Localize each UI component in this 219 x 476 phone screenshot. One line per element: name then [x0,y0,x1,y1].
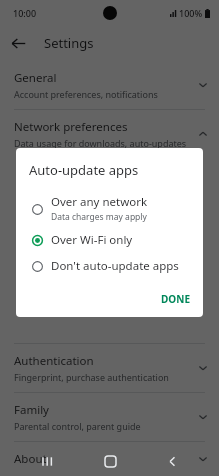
button[interactable]: Back [0,25,36,61]
button[interactable]: Don't auto-update apps [16,253,203,279]
staticText: Settings [44,34,94,52]
button[interactable]: Network preferences [0,110,219,158]
staticText: Data usage for downloads, auto-updates [14,137,187,149]
button[interactable]: Over Wi-Fi only [16,227,203,253]
staticText: Over Wi-Fi only [51,232,133,248]
button[interactable]: Authentication [0,344,219,392]
staticText: Network preferences [14,119,128,135]
staticText: Account preferences, notifications [14,88,158,100]
button[interactable]: About [0,442,219,476]
staticText: DONE [161,292,190,306]
staticText: Parental control, parent guide [14,420,141,432]
button[interactable]: Back [157,446,187,476]
staticText: 100% [179,7,203,19]
button[interactable]: Family [0,393,219,441]
button[interactable]: Over any network [16,190,203,227]
button[interactable]: General [0,61,219,109]
staticText: Don't auto-update apps [51,258,179,274]
staticText: Fingerprint, purchase authentication [14,371,169,383]
staticText: Auto-update apps [29,161,139,179]
button[interactable]: DONE [148,287,203,311]
staticText: Data charges may apply [51,211,147,223]
staticText: Over any network [51,194,148,210]
staticText: 10:00 [13,7,37,19]
button[interactable]: Recent apps [32,446,62,476]
staticText: Family [14,402,49,418]
staticText: About [14,451,47,467]
staticText: General [14,70,57,86]
button[interactable]: Home [95,446,125,476]
staticText: Authentication [14,353,94,369]
